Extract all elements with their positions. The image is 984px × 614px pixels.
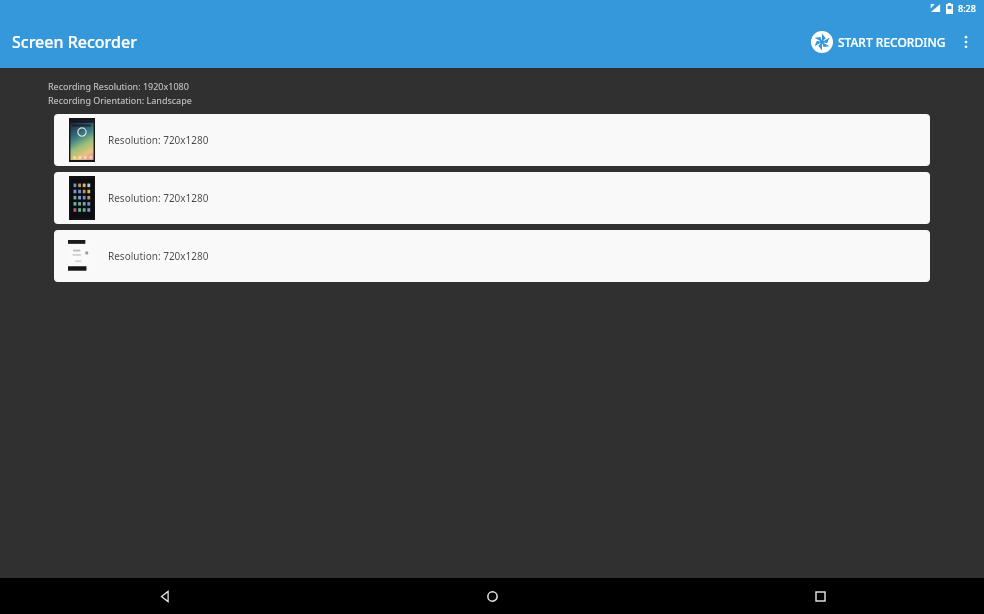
staticText: START RECORDING [838,34,946,50]
staticText: Resolution: 720x1280 [108,191,209,205]
staticText: Resolution: 720x1280 [108,249,209,263]
button[interactable]: More options [952,28,980,56]
button[interactable]: Recent apps [656,578,984,614]
button[interactable]: Start recording [805,25,952,59]
staticText: Recording Resolution: 1920x1080 [48,80,189,92]
button[interactable]: Resolution: 720x1280 [54,230,930,282]
staticText: Recording Orientation: Landscape [48,94,192,106]
button[interactable]: Back [0,578,328,614]
button[interactable]: Resolution: 720x1280 [54,172,930,224]
staticText: 8:28 [958,2,976,14]
button[interactable]: Home [328,578,656,614]
staticText: Screen Recorder [12,31,137,53]
staticText: Resolution: 720x1280 [108,133,209,147]
other: Start recording [811,31,833,53]
button[interactable]: Resolution: 720x1280 [54,114,930,166]
